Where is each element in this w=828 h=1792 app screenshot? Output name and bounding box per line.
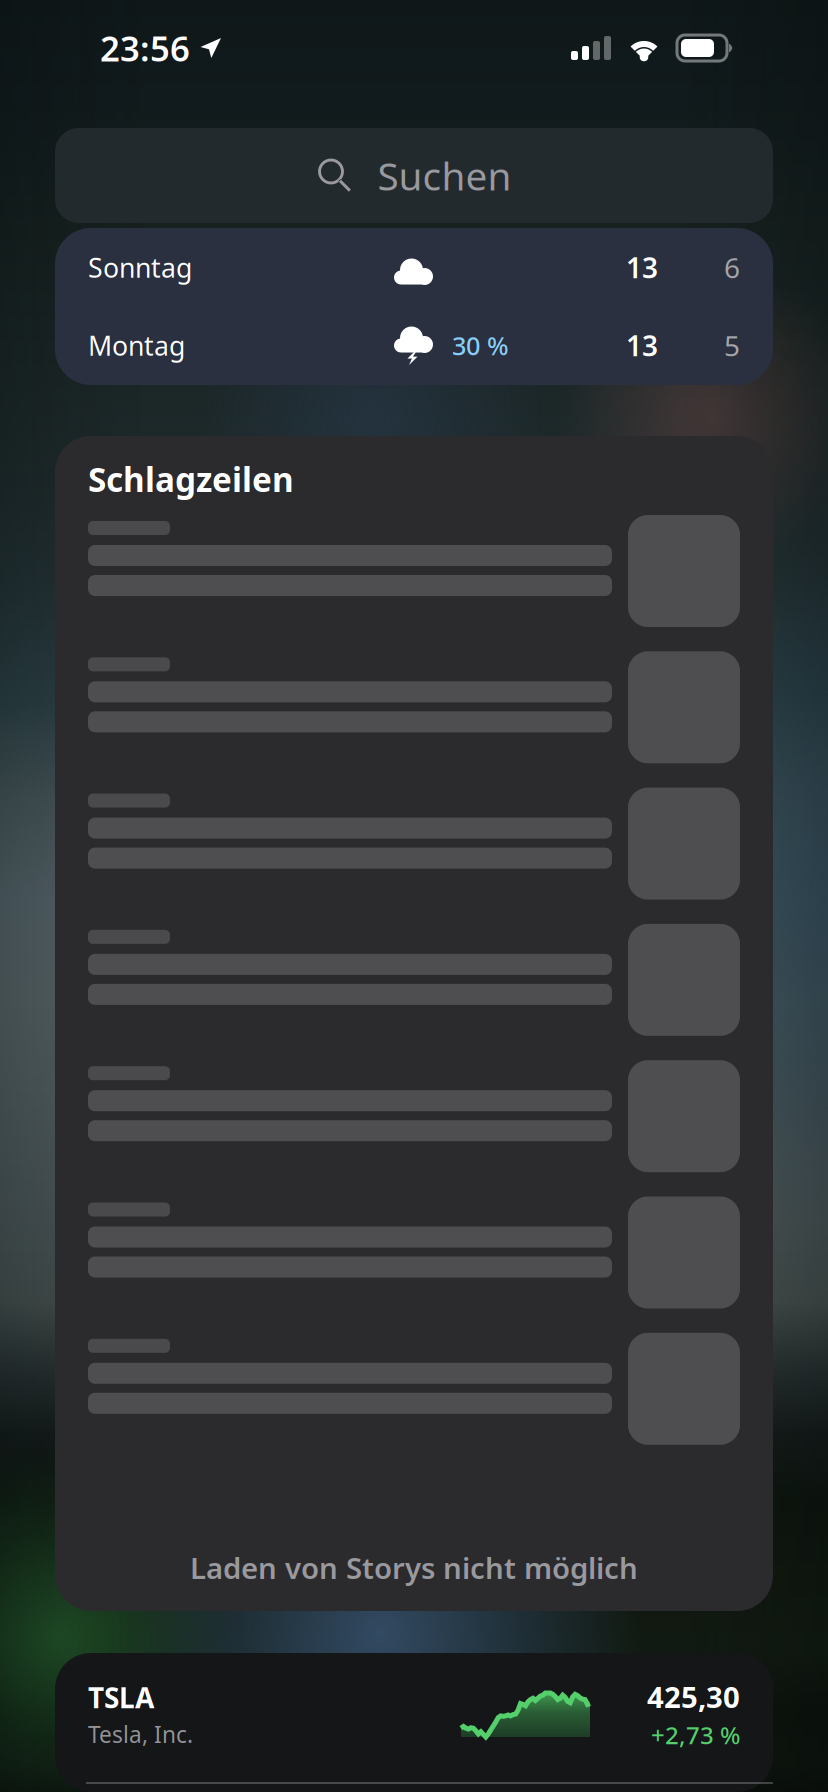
staticText: Sonntag [88, 250, 192, 285]
staticText: 13 [626, 327, 658, 364]
button[interactable]: Suchen [55, 128, 773, 223]
staticText: 23:56 [100, 25, 190, 71]
staticText: 5 [724, 327, 740, 364]
button[interactable]: TSLA [55, 1653, 773, 1792]
staticText: 13 [626, 249, 658, 286]
staticText: Suchen [377, 150, 511, 201]
staticText: TSLA [88, 1679, 154, 1716]
staticText: Schlagzeilen [88, 457, 294, 501]
staticText: 425,30 [647, 1677, 740, 1716]
staticText: Montag [88, 328, 185, 363]
staticText: 6 [724, 249, 740, 286]
button[interactable]: Schlagzeilen [55, 436, 773, 1611]
staticText: 30 % [452, 329, 509, 362]
staticText: Laden von Storys nicht möglich [190, 1548, 638, 1587]
button[interactable]: Sonntag [55, 228, 773, 385]
staticText: Tesla, Inc. [88, 1719, 193, 1749]
staticText: +2,73 % [651, 1719, 740, 1751]
